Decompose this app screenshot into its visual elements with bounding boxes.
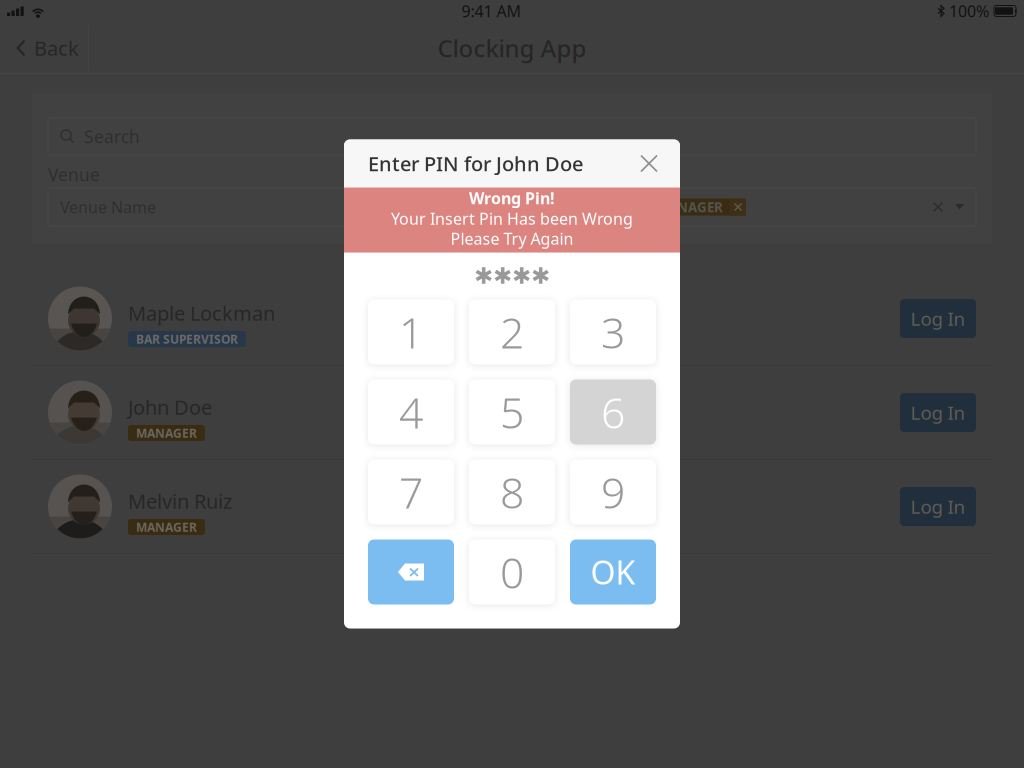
staticText: 8 xyxy=(500,464,524,520)
button[interactable]: OK xyxy=(570,539,656,604)
staticText: 0 xyxy=(500,544,524,600)
staticText: Venue xyxy=(48,163,100,186)
button[interactable]: 9 xyxy=(570,459,656,524)
staticText: OK xyxy=(590,551,635,593)
staticText: Back xyxy=(34,35,79,61)
staticText: Maple Lockman xyxy=(128,300,275,326)
staticText: ✱✱✱✱ xyxy=(474,263,550,289)
button[interactable]: Log In xyxy=(900,487,976,526)
staticText: MANAGER xyxy=(136,519,197,535)
staticText: 5 xyxy=(500,384,524,440)
staticText: Your Insert Pin Has been Wrong xyxy=(391,208,633,229)
button[interactable]: Back xyxy=(0,22,88,74)
button[interactable]: Delete xyxy=(368,539,454,604)
staticText: MANAGER xyxy=(655,198,723,216)
button[interactable]: 1 xyxy=(368,299,454,364)
button[interactable]: Log In xyxy=(900,393,976,432)
staticText: Log In xyxy=(910,400,965,425)
staticText: 1 xyxy=(399,304,423,360)
button[interactable]: 3 xyxy=(570,299,656,364)
button[interactable]: 5 xyxy=(469,379,555,444)
staticText: 9:41 AM xyxy=(461,0,521,22)
staticText: Clocking App xyxy=(437,32,586,64)
staticText: 7 xyxy=(399,464,423,520)
button[interactable]: 8 xyxy=(469,459,555,524)
staticText: 2 xyxy=(500,304,524,360)
staticText: Venue Name xyxy=(60,196,156,218)
button[interactable]: 7 xyxy=(368,459,454,524)
staticText: 3 xyxy=(601,304,625,360)
staticText: Search xyxy=(84,125,140,148)
staticText: 6 xyxy=(601,384,625,440)
staticText: MANAGER xyxy=(136,425,197,441)
button[interactable]: Log In xyxy=(900,299,976,338)
button[interactable]: Close xyxy=(627,141,671,185)
staticText: 9 xyxy=(601,464,625,520)
staticText: Log In xyxy=(910,306,965,331)
staticText: 4 xyxy=(399,384,423,440)
staticText: Melvin Ruiz xyxy=(128,488,232,514)
staticText: Please Try Again xyxy=(450,228,573,249)
staticText: 100% xyxy=(949,0,989,22)
button[interactable]: 6 xyxy=(570,379,656,444)
button[interactable]: 2 xyxy=(469,299,555,364)
staticText: Log In xyxy=(910,494,965,519)
staticText: Wrong Pin! xyxy=(469,187,555,209)
staticText: Enter PIN for John Doe xyxy=(368,150,583,177)
button[interactable]: 4 xyxy=(368,379,454,444)
staticText: BAR SUPERVISOR xyxy=(136,331,238,347)
button[interactable]: 0 xyxy=(469,539,555,604)
staticText: John Doe xyxy=(128,394,212,420)
